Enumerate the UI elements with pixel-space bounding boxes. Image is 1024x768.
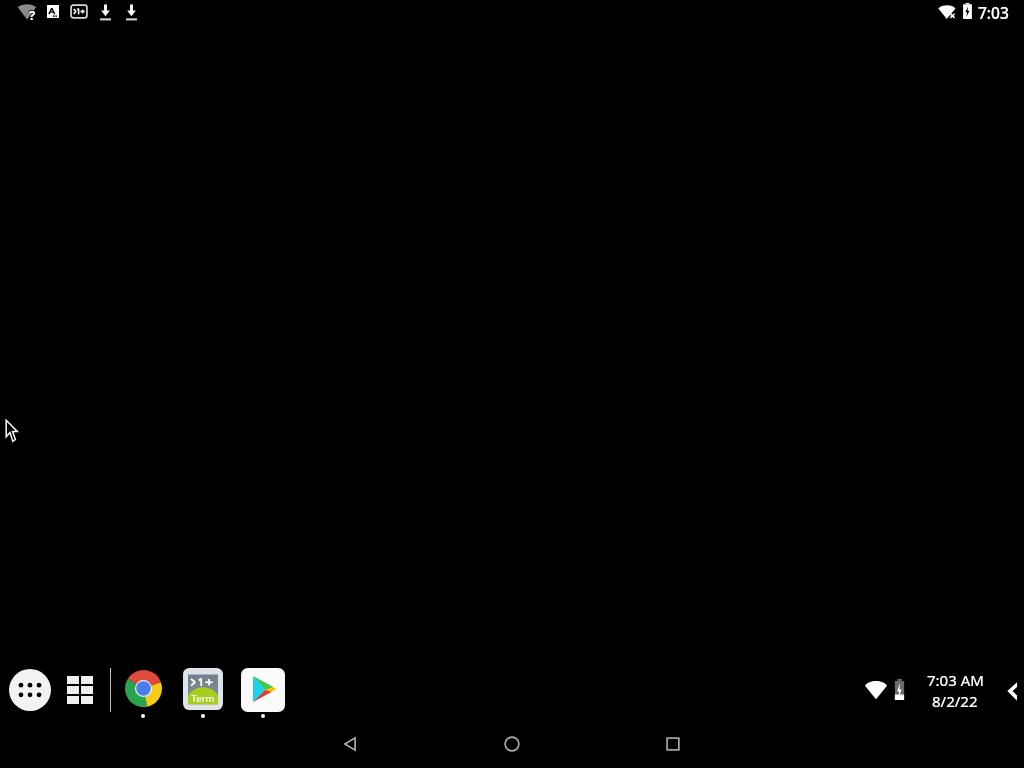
button[interactable]: Expand taskbar <box>1003 680 1021 702</box>
button[interactable]: Play Store <box>241 668 285 712</box>
staticText: 7:03 <box>978 2 1009 23</box>
button[interactable]: Chrome <box>125 670 162 707</box>
staticText: ? <box>29 6 36 24</box>
button[interactable]: Terminal <box>183 668 223 710</box>
button[interactable]: Home <box>488 720 536 768</box>
button[interactable]: All apps <box>9 669 51 711</box>
button[interactable]: Recent apps <box>66 674 94 706</box>
button[interactable]: Recents <box>649 720 697 768</box>
button[interactable]: Back <box>326 720 374 768</box>
staticText: 8/2/22 <box>932 691 978 711</box>
staticText: 7:03 AM <box>927 670 984 690</box>
staticText: ? <box>28 5 36 23</box>
staticText: Term <box>188 692 218 705</box>
